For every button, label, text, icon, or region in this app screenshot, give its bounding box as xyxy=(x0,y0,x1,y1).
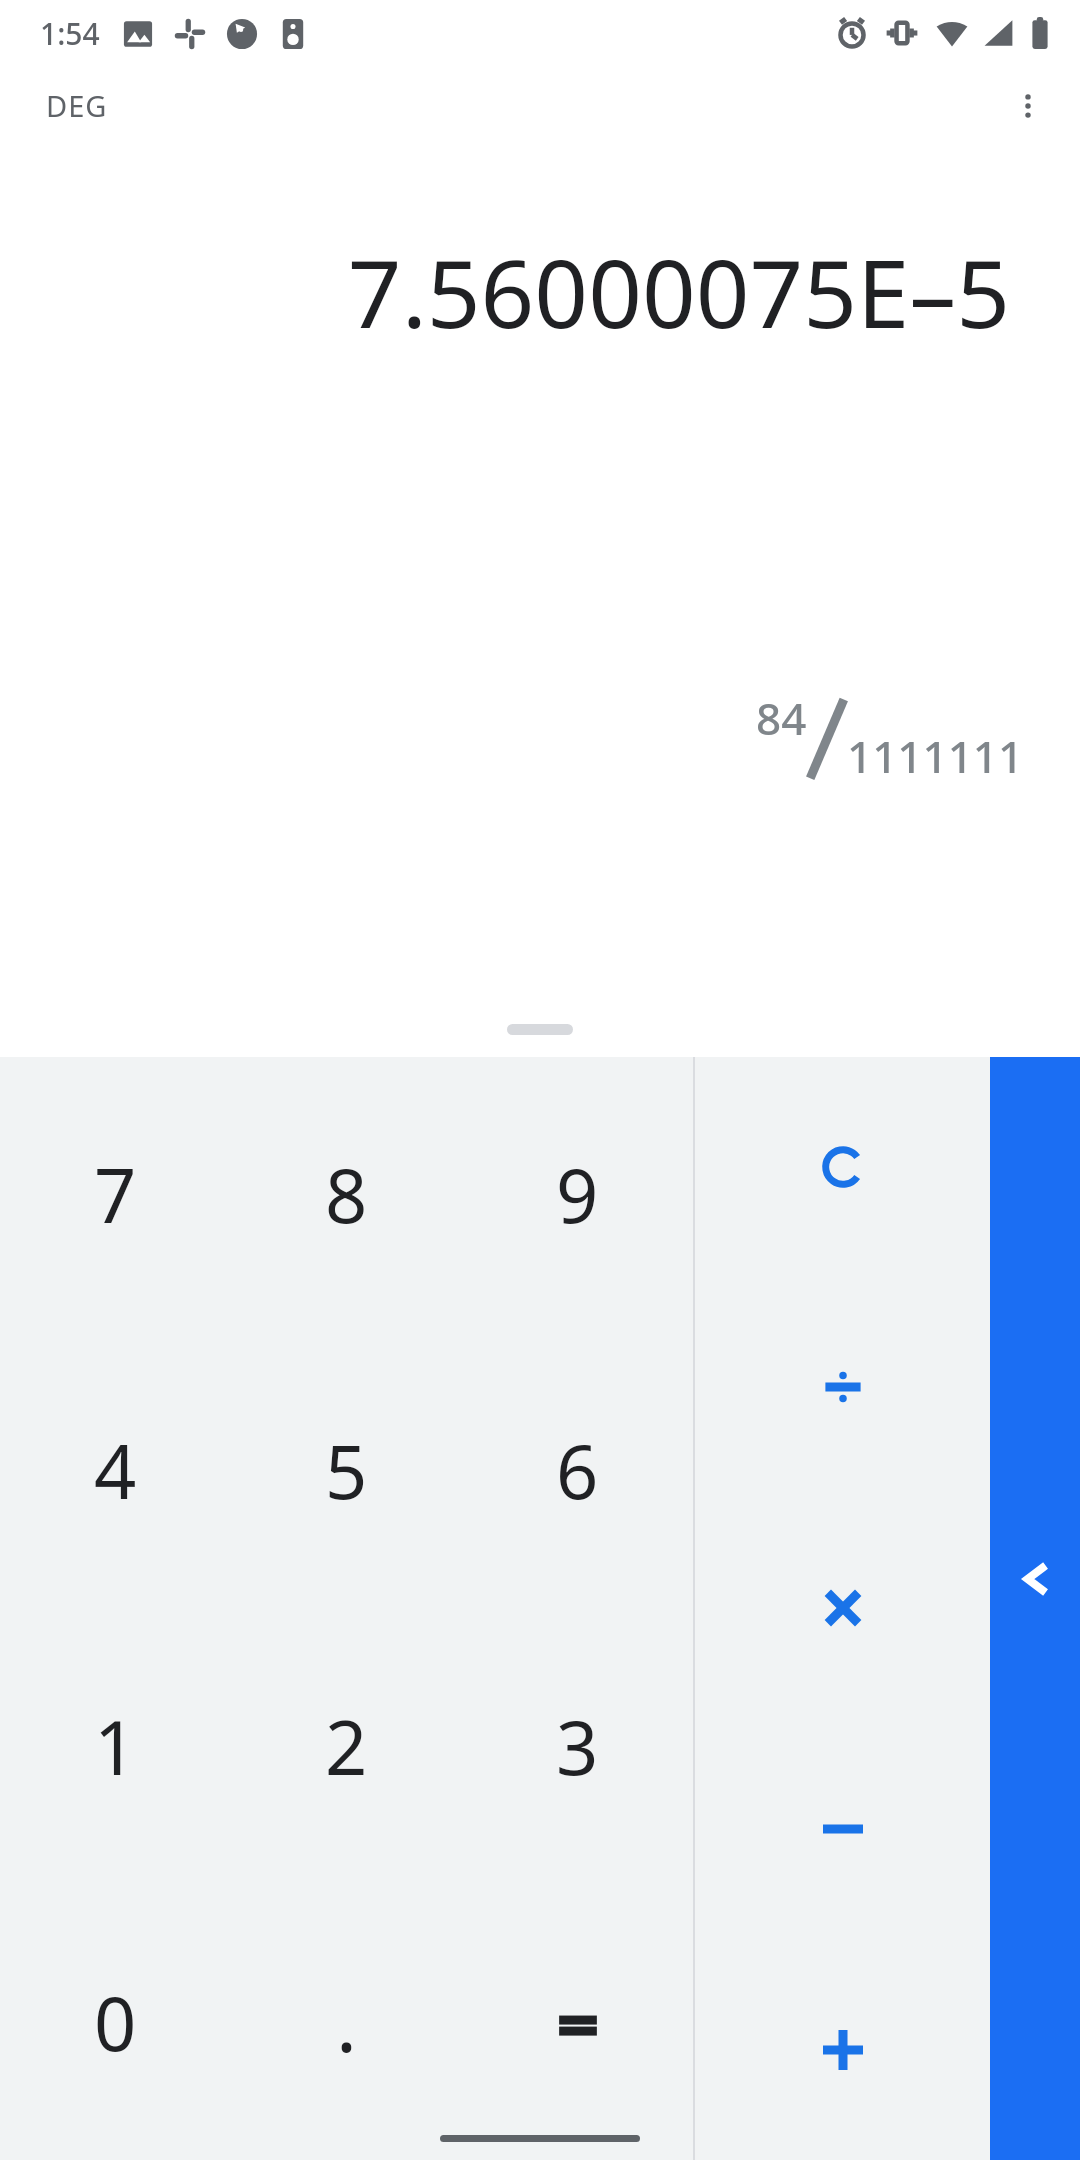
button[interactable]: Divide xyxy=(695,1277,990,1497)
staticText: 84 xyxy=(756,688,807,748)
button[interactable]: Subtract xyxy=(695,1718,990,1939)
button[interactable]: 7 xyxy=(0,1057,231,1332)
button[interactable]: 84 xyxy=(0,690,1024,786)
staticText: . xyxy=(336,1969,357,2075)
staticText: 3 xyxy=(556,1696,599,1797)
button[interactable]: Open advanced pad xyxy=(990,1057,1080,2160)
button[interactable]: 0 xyxy=(0,1884,231,2160)
button[interactable]: Multiply xyxy=(695,1497,990,1718)
button[interactable]: Add xyxy=(695,1939,990,2160)
staticText: 2 xyxy=(325,1696,368,1797)
staticText: 8 xyxy=(325,1144,368,1245)
button[interactable]: 2 xyxy=(231,1608,462,1884)
staticText: 1111111 xyxy=(847,726,1024,786)
staticText: 1 xyxy=(94,1696,137,1797)
button[interactable]: . xyxy=(231,1884,462,2160)
staticText: 0 xyxy=(94,1972,137,2073)
staticText: DEG xyxy=(46,86,108,125)
button[interactable]: More options xyxy=(1000,78,1056,134)
button[interactable] xyxy=(462,1884,693,2160)
staticText: 4 xyxy=(94,1420,137,1521)
staticText: 6 xyxy=(556,1420,599,1521)
staticText: 7 xyxy=(94,1144,137,1245)
button[interactable]: 4 xyxy=(0,1332,231,1608)
button[interactable]: 8 xyxy=(231,1057,462,1332)
button[interactable]: 1 xyxy=(0,1608,231,1884)
button[interactable]: 7.56000075E–5 xyxy=(0,228,1010,356)
button[interactable]: DEG xyxy=(42,82,112,129)
button[interactable]: 9 xyxy=(462,1057,693,1332)
staticText: 7.56000075E–5 xyxy=(347,228,1010,356)
button[interactable]: 5 xyxy=(231,1332,462,1608)
button[interactable]: Clear xyxy=(695,1057,990,1277)
button[interactable]: 6 xyxy=(462,1332,693,1608)
staticText: 5 xyxy=(325,1420,368,1521)
button[interactable]: 3 xyxy=(462,1608,693,1884)
staticText: 9 xyxy=(556,1144,599,1245)
staticText: 1:54 xyxy=(40,13,100,54)
